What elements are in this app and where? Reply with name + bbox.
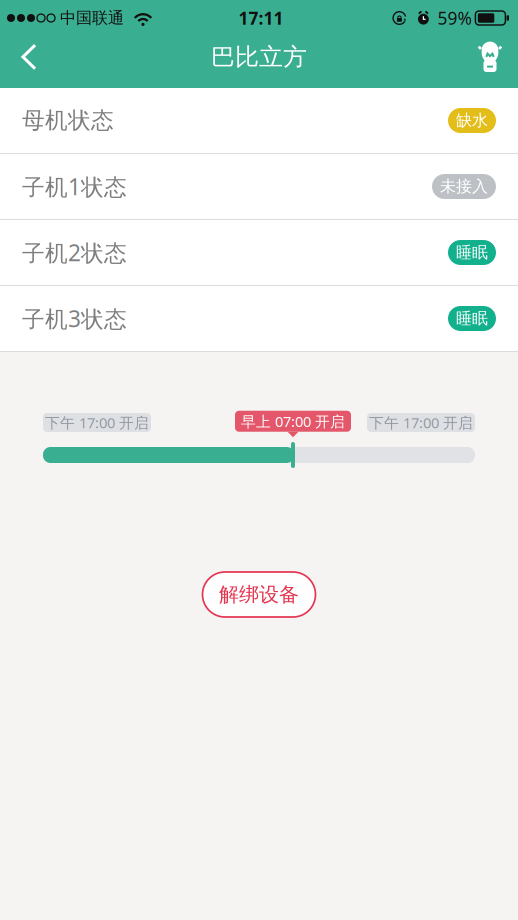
staticText: 缺水 — [456, 110, 488, 131]
button[interactable]: Device details — [468, 36, 512, 88]
button[interactable]: 母机状态 — [0, 88, 518, 153]
staticText: 59% — [437, 6, 471, 30]
staticText: 睡眠 — [456, 308, 488, 329]
staticText: 下午 17:00 开启 — [45, 412, 149, 432]
staticText: 17:11 — [238, 6, 283, 30]
button[interactable]: 解绑设备 — [202, 572, 315, 617]
button[interactable]: Back — [7, 36, 51, 88]
staticText: 巴比立方 — [211, 42, 307, 72]
button[interactable]: 子机2状态 — [0, 220, 518, 285]
staticText: 中国联通 — [60, 8, 124, 28]
button[interactable]: 子机1状态 — [0, 154, 518, 219]
staticText: 下午 17:00 开启 — [369, 412, 473, 432]
staticText: 母机状态 — [22, 106, 114, 135]
staticText: 子机3状态 — [22, 303, 127, 334]
staticText: 子机2状态 — [22, 237, 127, 268]
staticText: 解绑设备 — [219, 582, 299, 607]
staticText: 子机1状态 — [22, 171, 127, 202]
staticText: 早上 07:00 开启 — [241, 411, 345, 431]
staticText: 未接入 — [440, 176, 488, 197]
staticText: 睡眠 — [456, 242, 488, 263]
button[interactable]: 子机3状态 — [0, 286, 518, 351]
